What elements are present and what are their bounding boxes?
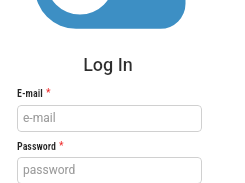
staticText: Log In: [0, 54, 216, 75]
staticText: Password: [17, 141, 56, 153]
staticText: e-mail: [23, 111, 56, 125]
staticText: *: [46, 87, 51, 99]
staticText: *: [59, 140, 64, 152]
staticText: password: [23, 163, 76, 177]
button[interactable]: password: [17, 157, 202, 183]
button[interactable]: e-mail: [17, 105, 202, 132]
staticText: E-mail: [17, 88, 43, 100]
